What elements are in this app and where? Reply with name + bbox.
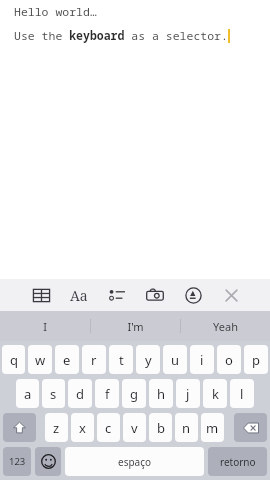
button[interactable]: Insert table <box>28 282 54 308</box>
button[interactable]: retorno <box>208 447 267 476</box>
button[interactable]: o <box>217 345 241 374</box>
staticText: i <box>200 351 204 369</box>
staticText: c <box>105 419 112 437</box>
staticText: t <box>119 351 124 369</box>
button[interactable]: Markup <box>180 282 206 308</box>
button[interactable]: a <box>16 379 39 408</box>
button[interactable]: Camera <box>142 282 168 308</box>
staticText: Hello world… <box>14 4 97 20</box>
staticText: s <box>50 385 57 403</box>
staticText: e <box>63 351 71 369</box>
button[interactable]: h <box>149 379 173 408</box>
button[interactable]: I'm <box>91 311 180 341</box>
staticText: m <box>206 419 219 437</box>
button[interactable]: r <box>82 345 106 374</box>
staticText: h <box>157 385 166 403</box>
button[interactable]: Text format <box>66 282 92 308</box>
button[interactable]: d <box>68 379 92 408</box>
button[interactable]: z <box>45 413 68 442</box>
button[interactable]: p <box>244 345 268 374</box>
staticText: v <box>131 419 138 437</box>
staticText: n <box>182 419 191 437</box>
button[interactable]: Yeah <box>181 311 270 341</box>
staticText: y <box>145 351 152 369</box>
staticText: d <box>76 385 84 403</box>
button[interactable]: 123 <box>3 447 31 476</box>
staticText: r <box>91 351 97 369</box>
button[interactable]: n <box>175 413 198 442</box>
staticText: retorno <box>220 455 256 469</box>
button[interactable]: g <box>122 379 146 408</box>
staticText: Yeah <box>213 319 238 334</box>
button[interactable]: f <box>95 379 119 408</box>
button[interactable]: Checklist <box>104 282 130 308</box>
staticText: k <box>212 385 219 403</box>
staticText: o <box>225 351 233 369</box>
button[interactable]: x <box>71 413 94 442</box>
staticText: l <box>240 385 244 403</box>
staticText: p <box>252 351 260 369</box>
staticText: u <box>171 351 180 369</box>
staticText: I <box>43 319 47 334</box>
staticText: z <box>53 419 60 437</box>
button[interactable]: q <box>2 345 25 374</box>
button[interactable]: w <box>28 345 52 374</box>
button[interactable]: l <box>230 379 254 408</box>
button[interactable]: Close keyboard <box>218 282 244 308</box>
button[interactable]: b <box>149 413 172 442</box>
staticText: a <box>24 385 32 403</box>
button[interactable]: Backspace <box>234 413 267 442</box>
staticText: I'm <box>127 319 144 334</box>
staticText: Use the keyboard as a selector. <box>14 28 228 44</box>
staticText: f <box>105 385 110 403</box>
button[interactable]: m <box>201 413 224 442</box>
button[interactable]: e <box>55 345 79 374</box>
button[interactable]: v <box>123 413 146 442</box>
button[interactable]: c <box>97 413 120 442</box>
button[interactable]: s <box>42 379 65 408</box>
button[interactable]: y <box>136 345 160 374</box>
staticText: q <box>10 351 18 369</box>
button[interactable]: Emoji <box>35 447 61 476</box>
staticText: 123 <box>9 455 26 468</box>
button[interactable]: k <box>203 379 227 408</box>
staticText: w <box>35 351 46 369</box>
button[interactable]: j <box>176 379 200 408</box>
button[interactable]: Shift <box>3 413 36 442</box>
button[interactable]: i <box>190 345 214 374</box>
staticText: x <box>79 419 86 437</box>
staticText: g <box>130 385 138 403</box>
button[interactable]: I <box>0 311 90 341</box>
button[interactable]: espaço <box>65 447 204 476</box>
staticText: b <box>157 419 165 437</box>
staticText: j <box>186 385 190 403</box>
button[interactable]: t <box>109 345 133 374</box>
staticText: espaço <box>118 455 152 469</box>
button[interactable]: u <box>163 345 187 374</box>
staticText: Aa <box>70 286 88 305</box>
